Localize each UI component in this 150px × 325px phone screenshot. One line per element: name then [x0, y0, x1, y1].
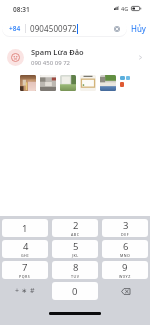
button[interactable]: 2	[52, 219, 98, 237]
button[interactable]: Delete	[102, 282, 148, 300]
staticText: 0904500972	[30, 23, 77, 34]
staticText: 8	[73, 261, 79, 274]
staticText: TUV	[71, 274, 80, 279]
button[interactable]: Photo	[60, 75, 76, 91]
button[interactable]: 0	[52, 282, 98, 300]
button[interactable]: 5	[52, 240, 98, 258]
button[interactable]: Photo	[100, 75, 116, 91]
staticText: 4	[23, 240, 29, 253]
staticText: MNO	[120, 253, 131, 258]
staticText: Spam Lừa Đảo	[31, 47, 84, 57]
staticText: 1	[22, 222, 28, 235]
staticText: 090 450 09 72	[31, 59, 71, 67]
button[interactable]: 3	[102, 219, 148, 237]
staticText: 9	[122, 261, 128, 274]
button[interactable]: Photo	[80, 75, 96, 91]
other: Clear text	[114, 26, 120, 32]
staticText: 7	[22, 261, 28, 274]
staticText: JKL	[72, 253, 79, 258]
button[interactable]: App suggestion	[120, 82, 124, 87]
staticText: + ∗ #	[15, 286, 36, 296]
staticText: DEF	[121, 232, 130, 237]
button[interactable]: 6	[102, 240, 148, 258]
button[interactable]: App suggestion	[120, 76, 125, 80]
staticText: 2	[73, 219, 79, 232]
staticText: +84	[9, 24, 21, 33]
staticText: 6	[123, 240, 129, 253]
staticText: ABC	[71, 232, 80, 237]
button[interactable]: Spam Lừa Đảo	[0, 44, 150, 70]
staticText: WXYZ	[119, 274, 131, 279]
staticText: 4G	[121, 5, 129, 12]
button[interactable]: Photo	[20, 75, 36, 91]
button[interactable]: Hủy	[129, 21, 148, 36]
staticText: 08:31	[13, 5, 30, 14]
staticText: PQRS	[19, 274, 31, 279]
button[interactable]: App suggestion	[126, 76, 130, 80]
staticText: 5	[73, 240, 79, 253]
button[interactable]: 1	[2, 219, 48, 237]
button[interactable]: 9	[102, 261, 148, 279]
staticText: Hủy	[131, 23, 146, 34]
staticText: 3	[123, 219, 129, 232]
staticText: 0	[72, 285, 78, 298]
button[interactable]: Photo	[40, 75, 56, 91]
button[interactable]: 8	[52, 261, 98, 279]
staticText: GHI	[21, 253, 30, 258]
button[interactable]: 4	[2, 240, 48, 258]
button[interactable]: Plus star pound	[2, 282, 48, 300]
button[interactable]: 7	[2, 261, 48, 279]
button[interactable]: +84	[2, 21, 127, 36]
